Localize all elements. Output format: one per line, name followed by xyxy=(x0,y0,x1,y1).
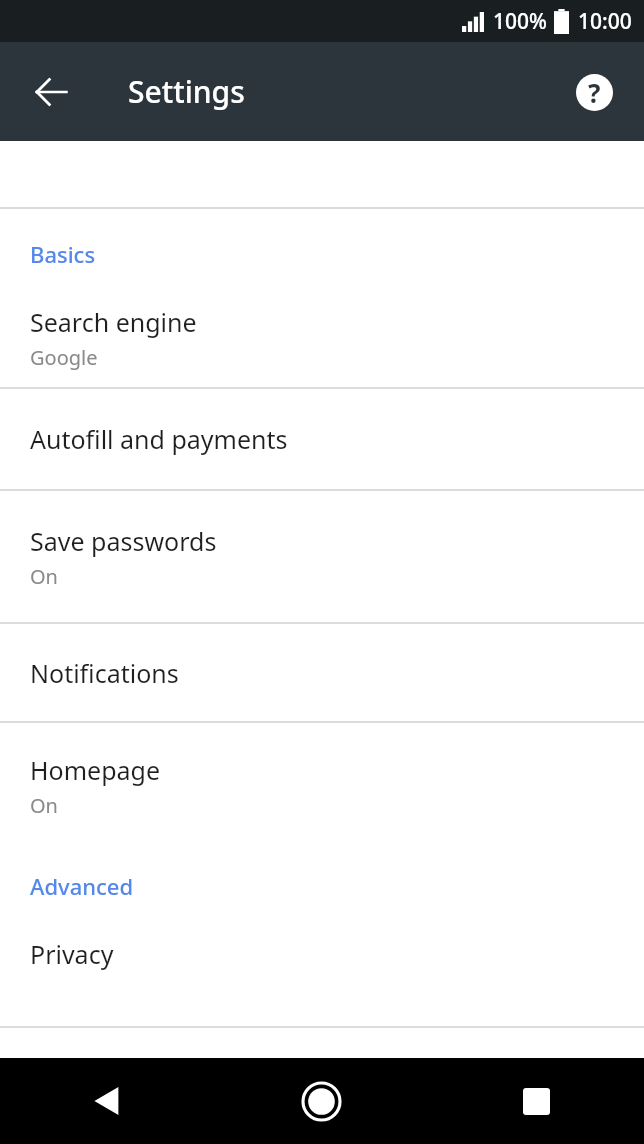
staticText: Advanced xyxy=(30,871,134,901)
button[interactable]: Recent apps xyxy=(429,1058,644,1144)
staticText: On xyxy=(30,563,58,590)
button[interactable]: Search engine xyxy=(0,289,644,387)
staticText: Save passwords xyxy=(30,524,217,558)
button[interactable]: Homepage xyxy=(0,723,644,849)
button[interactable]: Notifications xyxy=(0,624,644,721)
staticText: Settings xyxy=(128,71,245,112)
button[interactable]: Back xyxy=(0,1058,214,1144)
staticText: Google xyxy=(30,344,98,371)
button[interactable]: Privacy xyxy=(0,917,644,991)
staticText: 10:00 xyxy=(578,7,632,36)
staticText: Privacy xyxy=(30,937,114,971)
staticText: ? xyxy=(588,75,601,110)
staticText: Homepage xyxy=(30,753,161,787)
staticText: On xyxy=(30,792,58,819)
staticText: Autofill and payments xyxy=(30,422,288,456)
button[interactable]: Help xyxy=(566,64,622,120)
button[interactable]: Autofill and payments xyxy=(0,389,644,489)
staticText: 100% xyxy=(493,7,547,36)
button[interactable]: Back xyxy=(18,59,84,125)
staticText: Notifications xyxy=(30,656,179,690)
button[interactable]: Save passwords xyxy=(0,491,644,622)
staticText: Search engine xyxy=(30,305,197,339)
button[interactable]: Home xyxy=(214,1058,429,1144)
staticText: Basics xyxy=(30,239,96,269)
